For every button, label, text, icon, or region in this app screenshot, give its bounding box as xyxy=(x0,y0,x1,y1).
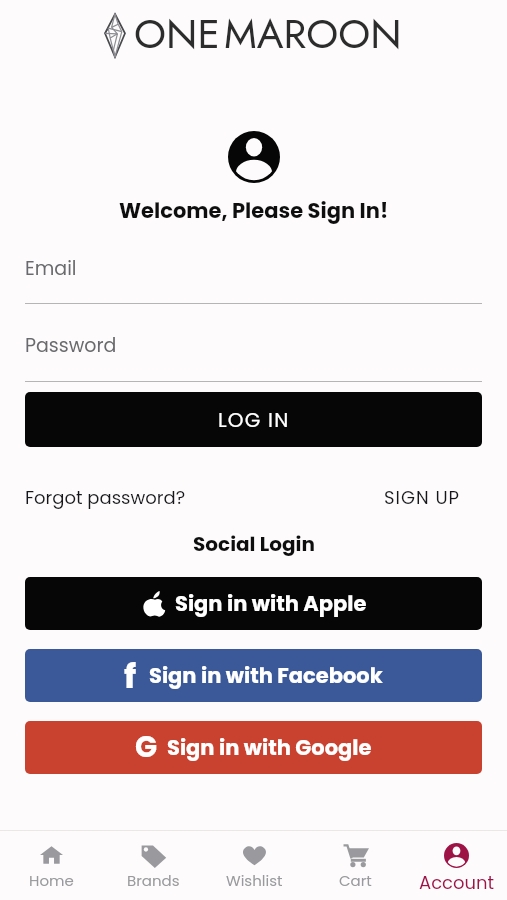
button[interactable]: Brands xyxy=(102,842,204,891)
button[interactable]: SIGN UP xyxy=(384,485,461,510)
button[interactable]: Home xyxy=(0,842,102,891)
staticText: G xyxy=(135,727,158,768)
button[interactable]: Sign in with Apple xyxy=(25,577,482,630)
button[interactable]: Cart xyxy=(305,842,406,891)
button[interactable]: Account xyxy=(406,842,507,895)
staticText: Sign in with Apple xyxy=(175,589,367,618)
button[interactable]: LOG IN xyxy=(25,392,482,447)
staticText: MAROON xyxy=(224,5,402,64)
staticText: Account xyxy=(419,870,495,895)
staticText: Cart xyxy=(339,870,372,891)
staticText: Sign in with Facebook xyxy=(149,661,383,690)
staticText: Email xyxy=(25,255,77,282)
staticText: Password xyxy=(25,332,117,359)
button[interactable]: f xyxy=(25,649,482,702)
staticText: f xyxy=(124,652,137,700)
staticText: LOG IN xyxy=(218,406,290,434)
button[interactable]: Wishlist xyxy=(204,842,305,891)
staticText: Wishlist xyxy=(226,870,283,891)
staticText: Brands xyxy=(127,870,180,891)
button[interactable]: Forgot password? xyxy=(25,485,186,510)
staticText: Social Login xyxy=(193,530,315,558)
staticText: Welcome, Please Sign In! xyxy=(119,196,389,225)
staticText: Home xyxy=(29,870,74,891)
staticText: ONE xyxy=(134,5,220,64)
button[interactable]: G xyxy=(25,721,482,774)
staticText: Sign in with Google xyxy=(167,733,372,762)
